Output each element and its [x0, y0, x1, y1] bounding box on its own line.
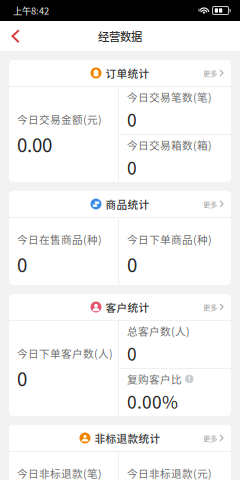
button[interactable]: Back [0, 21, 33, 51]
staticText: 上午8:42 [13, 4, 49, 17]
staticText: 更多 [203, 199, 217, 209]
staticText: 经营数据 [98, 28, 142, 44]
staticText: 更多 [203, 433, 217, 443]
staticText: 商品统计 [105, 196, 149, 212]
staticText: 客户统计 [105, 299, 149, 315]
staticText: 今日下单客户数(人) [17, 345, 113, 361]
staticText: 今日交易箱数(箱) [127, 137, 212, 153]
staticText: 复购客户比 [127, 371, 182, 387]
staticText: 今日在售商品(种) [17, 231, 102, 247]
button[interactable]: 更多 [203, 60, 231, 86]
staticText: 0 [127, 341, 137, 366]
button[interactable]: 更多 [203, 425, 231, 451]
staticText: 今日非标退款(笔) [17, 465, 102, 480]
staticText: 今日非标退款(元) [127, 465, 212, 480]
staticText: 订单统计 [105, 65, 149, 81]
staticText: 0 [127, 251, 137, 278]
staticText: 今日下单商品(种) [127, 231, 212, 247]
staticText: 今日交易金额(元) [17, 111, 102, 127]
staticText: 非标退款统计 [94, 430, 160, 446]
staticText: 0 [17, 251, 27, 278]
button[interactable]: 更多 [203, 191, 231, 217]
staticText: 0 [127, 107, 137, 132]
staticText: 今日交易笔数(笔) [127, 89, 212, 105]
staticText: 0 [127, 155, 137, 180]
staticText: 更多 [203, 68, 217, 78]
staticText: 0 [17, 365, 27, 392]
staticText: 0.00 [17, 131, 52, 158]
staticText: 更多 [203, 302, 217, 312]
button[interactable]: 更多 [203, 294, 231, 320]
staticText: 总客户数(人) [127, 323, 190, 339]
staticText: 0.00% [127, 389, 178, 414]
